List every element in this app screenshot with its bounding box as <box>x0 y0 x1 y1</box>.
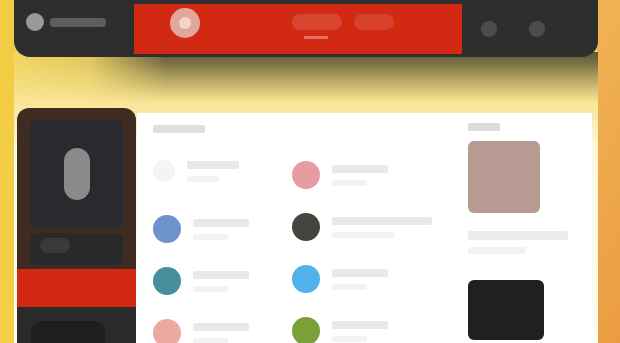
button[interactable] <box>292 201 452 253</box>
button[interactable] <box>153 307 292 343</box>
button[interactable]: More options <box>524 16 550 42</box>
button[interactable] <box>292 305 452 343</box>
button[interactable] <box>292 149 452 201</box>
button[interactable] <box>153 203 292 255</box>
button[interactable] <box>153 255 292 307</box>
button[interactable]: Profile <box>476 16 502 42</box>
button[interactable]: Account <box>14 0 134 57</box>
button[interactable] <box>292 253 452 305</box>
button[interactable] <box>153 145 292 197</box>
